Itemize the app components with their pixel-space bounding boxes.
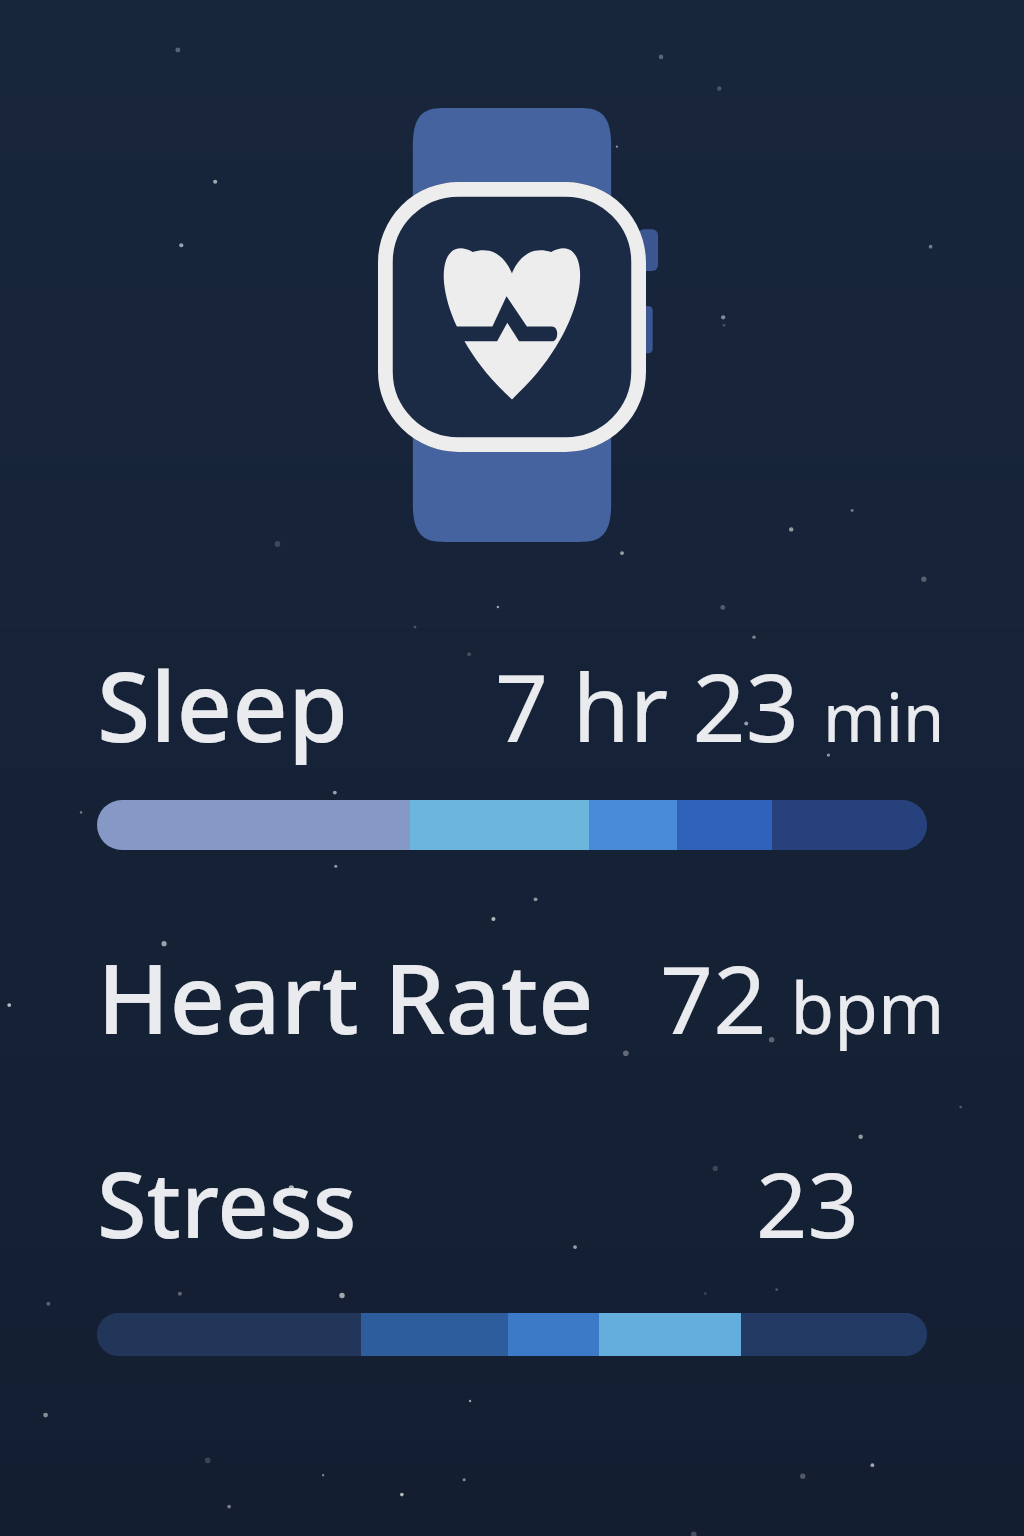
staticText: Stress (97, 1142, 357, 1265)
button[interactable] (97, 800, 927, 850)
button[interactable] (97, 1313, 927, 1356)
staticText: 7 hr 23 min (495, 643, 945, 770)
staticText: 72 bpm (660, 935, 945, 1062)
staticText: Sleep (97, 638, 349, 770)
button[interactable]: Stress (97, 1142, 945, 1265)
button[interactable]: Sleep (97, 638, 945, 770)
button[interactable]: Smartwatch heart rate (378, 100, 646, 550)
button[interactable]: Heart Rate (97, 930, 945, 1062)
staticText: 23 (756, 1142, 859, 1265)
staticText: Heart Rate (97, 930, 594, 1062)
